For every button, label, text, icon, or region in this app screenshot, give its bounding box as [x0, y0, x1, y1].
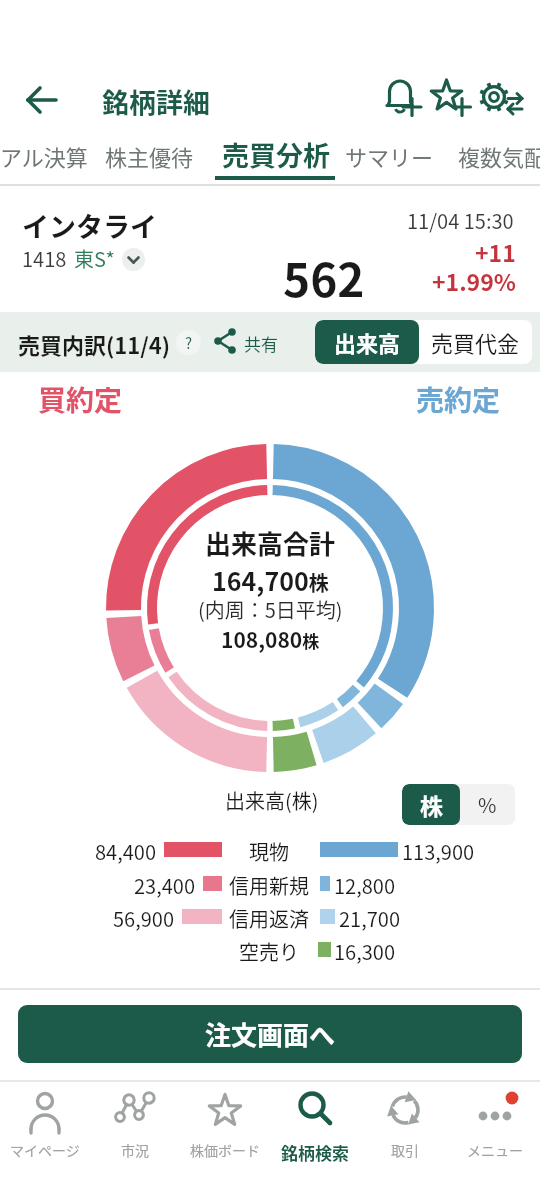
button[interactable]: マイページ: [0, 1084, 90, 1196]
staticText: %: [478, 790, 497, 819]
staticText: 買約定: [38, 379, 123, 420]
button[interactable]: %: [460, 784, 515, 825]
button[interactable]: 銘柄検索: [270, 1084, 360, 1196]
staticText: 108,080株: [221, 624, 320, 654]
staticText: サマリー: [345, 140, 434, 172]
staticText: 株主優待: [105, 140, 194, 172]
staticText: 11/04 15:30: [407, 206, 514, 235]
button[interactable]: 売買代金: [419, 320, 532, 364]
staticText: 113,900: [402, 837, 475, 866]
button[interactable]: 複数気配: [450, 132, 540, 182]
staticText: 銘柄検索: [281, 1140, 349, 1165]
staticText: 株: [420, 788, 443, 821]
button[interactable]: 株: [402, 784, 460, 825]
button[interactable]: [430, 78, 474, 122]
button[interactable]: 共有: [212, 326, 282, 360]
staticText: 出来高(株): [225, 786, 319, 815]
button[interactable]: 取引: [360, 1084, 450, 1196]
button[interactable]: 出来高: [315, 320, 419, 364]
staticText: 84,400: [95, 837, 157, 866]
staticText: 出来高合計: [205, 524, 336, 562]
button[interactable]: アル決算: [0, 132, 95, 182]
staticText: ?: [185, 332, 193, 354]
staticText: メニュー: [467, 1140, 523, 1160]
button[interactable]: 注文画面へ: [18, 1005, 522, 1063]
staticText: 1418: [22, 244, 67, 273]
button[interactable]: 売買分析: [210, 132, 340, 182]
staticText: 21,700: [339, 904, 401, 933]
staticText: 現物: [249, 837, 289, 866]
button[interactable]: 株価ボード: [180, 1084, 270, 1196]
button[interactable]: 市況: [90, 1084, 180, 1196]
staticText: 銘柄詳細: [102, 82, 210, 121]
button[interactable]: [384, 78, 428, 122]
staticText: 株価ボード: [190, 1140, 260, 1160]
button[interactable]: [477, 78, 525, 126]
button[interactable]: サマリー: [340, 132, 440, 182]
staticText: 空売り: [239, 937, 299, 966]
staticText: +11: [475, 235, 516, 268]
staticText: 164,700株: [212, 562, 329, 598]
staticText: (内周：5日平均): [198, 595, 343, 624]
staticText: 56,900: [113, 904, 175, 933]
staticText: アル決算: [0, 140, 88, 172]
button[interactable]: メニュー: [450, 1084, 540, 1196]
staticText: インタライ: [22, 206, 157, 245]
staticText: 16,300: [334, 937, 396, 966]
button[interactable]: 株主優待: [100, 132, 200, 182]
staticText: マイページ: [10, 1140, 80, 1160]
staticText: 売買内訳(11/4): [18, 328, 171, 360]
staticText: 東S*: [74, 244, 115, 273]
staticText: 売買分析: [222, 135, 330, 174]
staticText: 取引: [391, 1140, 419, 1160]
button[interactable]: [18, 76, 66, 124]
button[interactable]: ?: [176, 330, 201, 355]
staticText: 売買代金: [431, 326, 520, 358]
staticText: 出来高: [334, 326, 401, 358]
staticText: 市況: [121, 1140, 149, 1160]
staticText: 562: [283, 244, 365, 311]
staticText: +1.99%: [432, 264, 516, 297]
staticText: 売約定: [416, 379, 501, 420]
staticText: 共有: [244, 331, 278, 356]
staticText: 12,800: [334, 871, 396, 900]
button[interactable]: 1418: [22, 240, 182, 276]
staticText: 信用新規: [229, 871, 309, 900]
staticText: 複数気配: [458, 140, 540, 172]
staticText: 注文画面へ: [205, 1015, 336, 1053]
staticText: 23,400: [134, 871, 196, 900]
staticText: 信用返済: [229, 904, 309, 933]
